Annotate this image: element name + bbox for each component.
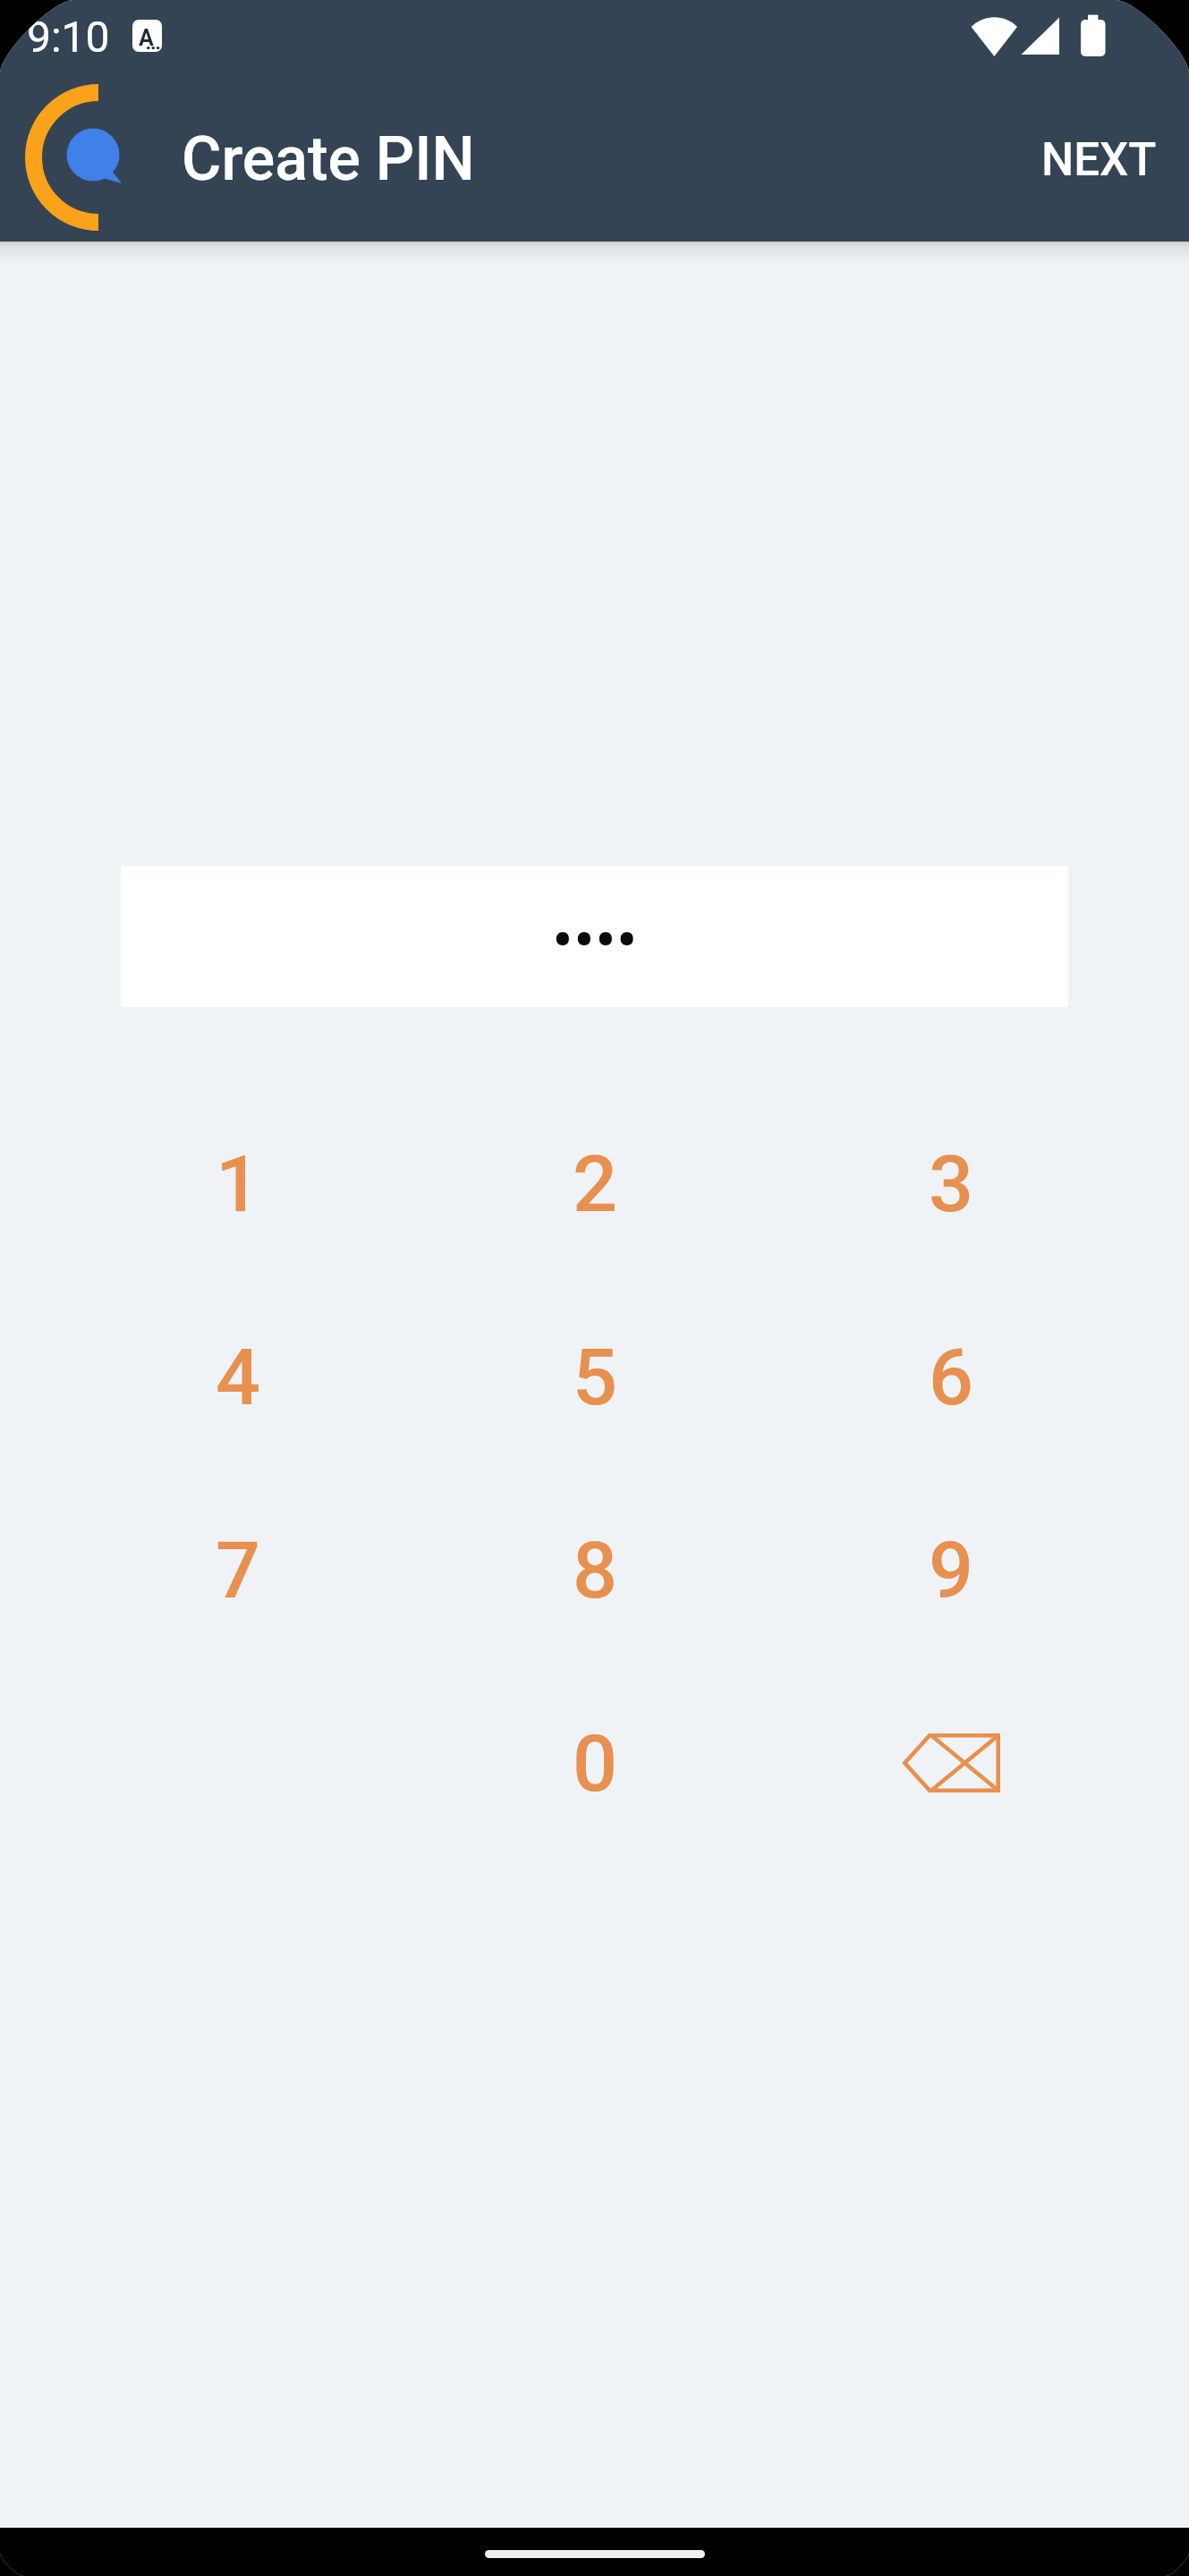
staticText: 8 xyxy=(573,1524,618,1616)
button[interactable]: 2 xyxy=(417,1087,773,1280)
staticText: NEXT xyxy=(1041,133,1157,187)
staticText: 3 xyxy=(929,1138,974,1230)
button[interactable]: 0 xyxy=(417,1666,773,1860)
button[interactable]: NEXT xyxy=(1022,115,1176,205)
button[interactable]: 8 xyxy=(417,1473,773,1666)
button[interactable]: •••• xyxy=(121,866,1068,1007)
staticText: Create PIN xyxy=(182,123,475,195)
button[interactable]: 6 xyxy=(773,1280,1129,1473)
staticText: 9:10 xyxy=(27,12,110,62)
button[interactable]: 1 xyxy=(60,1087,417,1280)
staticText: •••• xyxy=(552,902,638,977)
button[interactable]: 4 xyxy=(60,1280,417,1473)
staticText: 2 xyxy=(573,1138,618,1230)
staticText: 4 xyxy=(216,1331,261,1423)
button[interactable]: 7 xyxy=(60,1473,417,1666)
button[interactable]: 3 xyxy=(773,1087,1129,1280)
staticText: 5 xyxy=(573,1331,618,1423)
other: App logo xyxy=(18,77,134,241)
button[interactable]: 9 xyxy=(773,1473,1129,1666)
staticText: 6 xyxy=(929,1331,974,1423)
staticText: 9 xyxy=(929,1524,974,1616)
staticText: 0 xyxy=(573,1717,618,1809)
button[interactable]: Backspace xyxy=(773,1666,1129,1860)
staticText: 7 xyxy=(216,1524,261,1616)
staticText: A xyxy=(139,25,154,51)
staticText: 1 xyxy=(216,1138,261,1230)
button[interactable]: 5 xyxy=(417,1280,773,1473)
